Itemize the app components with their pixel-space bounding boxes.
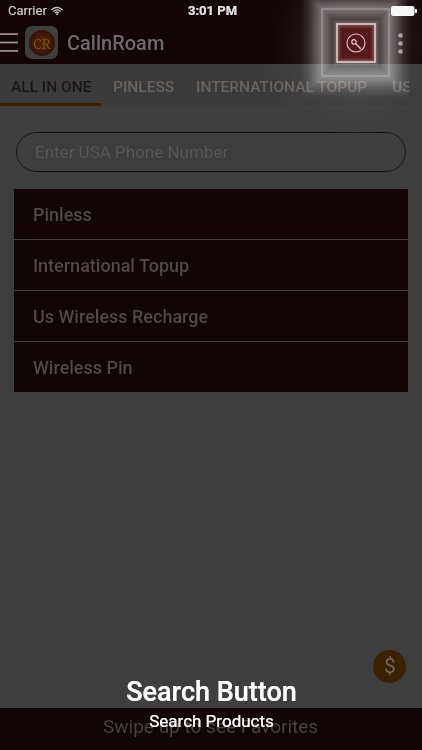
button[interactable]: International Topup (14, 240, 408, 290)
staticText: Enter USA Phone Number (35, 142, 229, 162)
button[interactable]: Wireless Pin (14, 342, 408, 392)
staticText: CallnRoam (67, 31, 165, 54)
staticText: Swipe up to see Favorites (103, 715, 319, 737)
staticText: Search Products (149, 711, 274, 731)
staticText: PINLESS (113, 78, 175, 96)
button[interactable]: More options (388, 30, 412, 56)
staticText: Search Button (126, 676, 297, 708)
staticText: ALL IN ONE (11, 78, 92, 96)
staticText: US WIRELESS RECHARGE (392, 78, 409, 96)
button[interactable]: Menu (0, 26, 24, 58)
button[interactable]: INTERNATIONAL TOPUP (196, 78, 368, 96)
staticText: CR (33, 34, 51, 53)
staticText: International Topup (33, 255, 190, 276)
button[interactable]: ALL IN ONE (11, 78, 92, 96)
staticText: Carrier (8, 3, 47, 18)
button[interactable]: Search (337, 24, 375, 62)
staticText: $ (384, 654, 396, 679)
button[interactable]: Us Wireless Recharge (14, 291, 408, 341)
staticText: Wireless Pin (33, 357, 133, 378)
button[interactable]: Pinless (14, 189, 408, 239)
staticText: Pinless (33, 204, 92, 225)
button[interactable]: Swipe up to see Favorites (0, 708, 422, 750)
button[interactable]: Recharge (373, 650, 406, 683)
button[interactable]: PINLESS (113, 78, 175, 96)
button[interactable]: Enter USA Phone Number (16, 132, 406, 172)
button[interactable]: US WIRELESS RECHARGE (392, 78, 409, 96)
button[interactable]: Logo (25, 26, 58, 59)
staticText: Us Wireless Recharge (33, 306, 209, 327)
staticText: 3:01 PM (188, 3, 238, 18)
staticText: INTERNATIONAL TOPUP (196, 78, 368, 96)
